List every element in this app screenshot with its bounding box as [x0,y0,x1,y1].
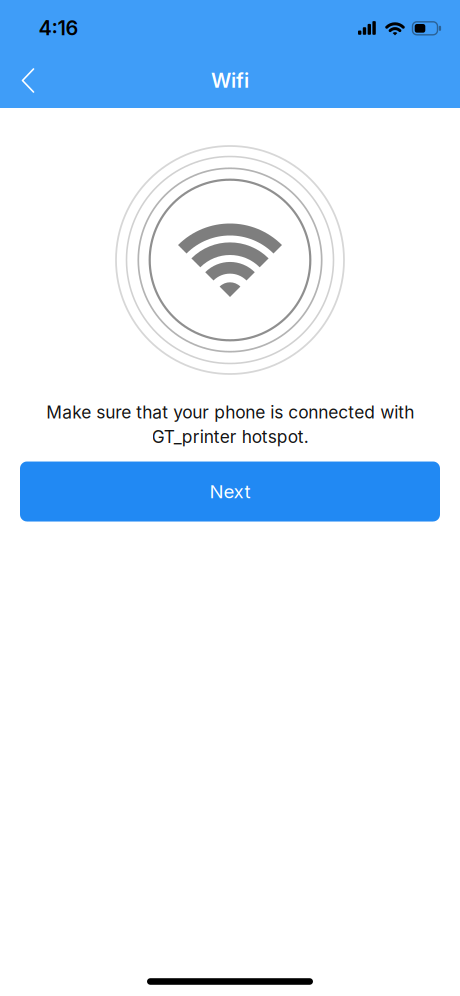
staticText: Wifi [211,69,249,92]
staticText: Make sure that your phone is connected w… [46,402,414,447]
button[interactable]: Back [6,58,50,102]
button[interactable]: Next [20,461,440,521]
staticText: 4:16 [38,16,78,40]
staticText: Next [209,480,250,502]
